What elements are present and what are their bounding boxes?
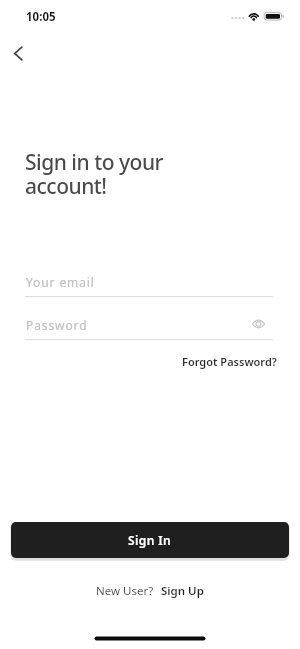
staticText: Your email bbox=[26, 274, 95, 290]
staticText: Sign in to your bbox=[25, 148, 163, 177]
button[interactable]: Sign Up bbox=[161, 583, 204, 599]
button[interactable]: Sign In bbox=[11, 522, 289, 558]
staticText: New User? bbox=[96, 583, 154, 599]
staticText: account! bbox=[25, 172, 107, 201]
staticText: Forgot Password? bbox=[182, 354, 277, 369]
button[interactable]: Password bbox=[25, 313, 273, 340]
staticText: Password bbox=[26, 317, 88, 333]
staticText: Sign Up bbox=[161, 583, 204, 599]
staticText: Sign In bbox=[128, 532, 172, 548]
staticText: 10:05 bbox=[26, 9, 56, 25]
button[interactable] bbox=[4, 40, 36, 68]
button[interactable]: Forgot Password? bbox=[205, 354, 300, 369]
button[interactable]: Your email bbox=[25, 270, 273, 297]
